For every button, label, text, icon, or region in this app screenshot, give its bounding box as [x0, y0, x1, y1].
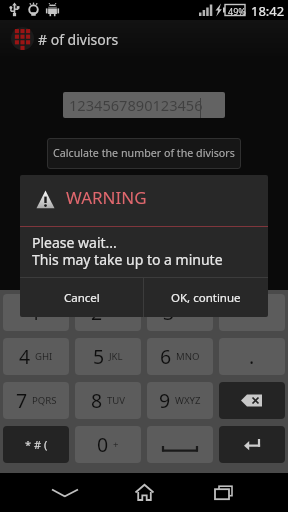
staticText: Cancel	[64, 290, 100, 306]
button[interactable]: * # (	[3, 426, 69, 463]
button[interactable]: Recent apps	[201, 478, 249, 508]
button[interactable]: 3	[147, 294, 213, 331]
staticText: 2	[91, 299, 103, 326]
button[interactable]: Delete	[219, 382, 285, 419]
button[interactable]: 1234567890123456	[63, 92, 225, 118]
button[interactable]: 6	[147, 338, 213, 375]
staticText: MNO	[176, 350, 200, 363]
staticText: .	[249, 343, 255, 370]
button[interactable]: Hide keyboard	[37, 478, 93, 508]
staticText: +	[113, 438, 119, 451]
staticText: 1234567890123456	[69, 95, 203, 115]
staticText: 18:42	[251, 2, 285, 20]
button[interactable]: 0	[75, 426, 141, 463]
button[interactable]: 7	[3, 382, 69, 419]
button[interactable]: 8	[75, 382, 141, 419]
button[interactable]: OK, continue	[144, 278, 268, 317]
staticText: 3	[163, 299, 175, 326]
staticText: 4	[19, 343, 31, 370]
staticText: 9	[159, 387, 171, 414]
staticText: # of divisors	[38, 30, 119, 49]
other: Delete	[219, 382, 285, 419]
button[interactable]: 4	[3, 338, 69, 375]
staticText: WARNING	[66, 186, 147, 209]
other: Space	[147, 426, 213, 463]
staticText: WXYZ	[175, 394, 201, 407]
button[interactable]: 2	[75, 294, 141, 331]
staticText: OK, continue	[171, 290, 241, 306]
button[interactable]: 9	[147, 382, 213, 419]
other: Enter	[219, 426, 285, 463]
button[interactable]: Enter	[219, 426, 285, 463]
button[interactable]: Space	[147, 426, 213, 463]
button[interactable]: Up	[219, 294, 285, 331]
button[interactable]: 1	[3, 294, 69, 331]
staticText: JKL	[109, 350, 123, 363]
staticText: TUV	[107, 394, 126, 407]
staticText: GHI	[35, 350, 53, 363]
staticText: 49%	[228, 5, 246, 17]
staticText: PQRS	[32, 394, 57, 407]
button[interactable]: Home	[121, 478, 169, 508]
staticText: This may take up to a minute	[32, 250, 223, 269]
staticText: ABC	[107, 306, 126, 319]
staticText: 8	[91, 387, 103, 414]
staticText: DEF	[179, 306, 197, 319]
staticText: * # (	[25, 437, 48, 452]
staticText: Calculate the number of the divisors	[53, 146, 235, 161]
staticText: 7	[16, 387, 28, 414]
staticText: Please wait...	[32, 233, 117, 252]
staticText: 0	[97, 431, 109, 458]
other: Up	[219, 294, 285, 331]
button[interactable]: Cancel	[20, 278, 143, 317]
staticText: 1	[30, 299, 42, 326]
button[interactable]: 5	[75, 338, 141, 375]
staticText: 6	[160, 343, 172, 370]
button[interactable]: Calculate the number of the divisors	[47, 138, 241, 169]
staticText: 5	[93, 343, 105, 370]
